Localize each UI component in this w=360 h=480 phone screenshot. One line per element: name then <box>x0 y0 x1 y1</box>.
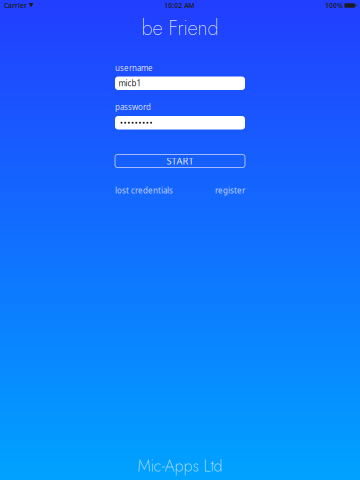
button[interactable]: register <box>215 186 245 195</box>
staticText: lost credentials <box>115 185 173 196</box>
staticText: 100% <box>325 1 343 10</box>
staticText: password <box>115 102 151 112</box>
staticText: START <box>166 155 193 167</box>
staticText: Carrier <box>4 1 27 10</box>
staticText: register <box>215 185 245 196</box>
button[interactable]: START <box>115 154 245 167</box>
button[interactable]: lost credentials <box>115 186 173 195</box>
staticText: 10:02 AM <box>164 1 194 10</box>
staticText: micb1 <box>118 78 141 88</box>
staticText: Mic-Apps Ltd <box>137 454 222 477</box>
staticText: username <box>115 63 153 73</box>
staticText: be Friend <box>141 13 218 42</box>
